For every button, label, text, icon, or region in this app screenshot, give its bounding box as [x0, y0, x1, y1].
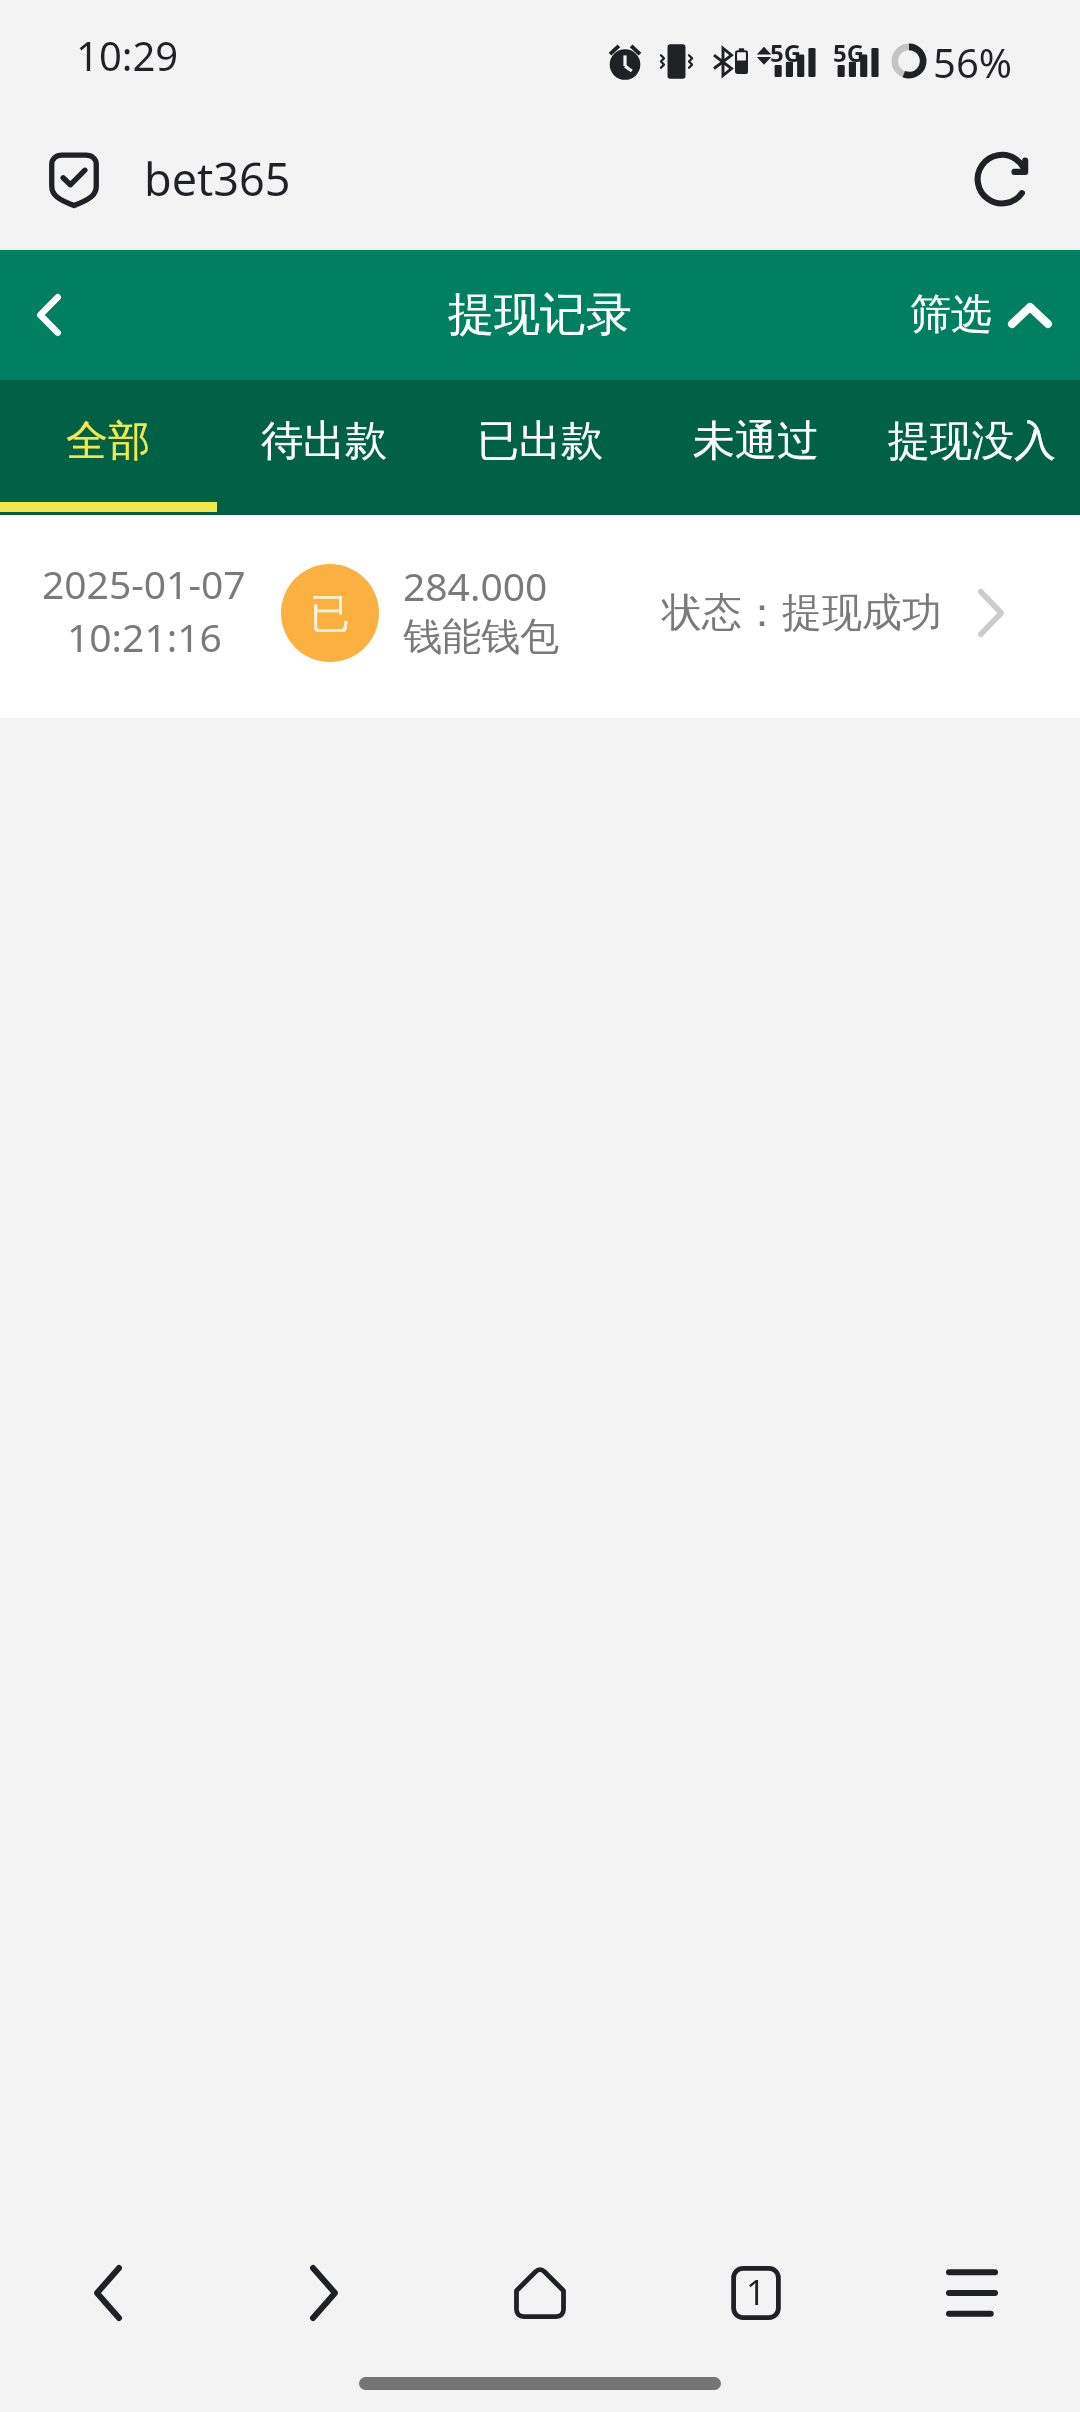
staticText: 待出款 — [261, 415, 387, 468]
staticText: 全部 — [66, 415, 150, 468]
button[interactable]: Back — [0, 2200, 216, 2385]
staticText: 56% — [933, 35, 1012, 89]
staticText: 5G — [770, 36, 802, 69]
staticText: 1 — [746, 2269, 766, 2315]
staticText: 2025-01-07 — [42, 557, 246, 610]
staticText: 筛选 — [910, 289, 992, 341]
button[interactable]: Site security info — [32, 138, 116, 222]
staticText: bet365 — [144, 148, 291, 209]
button[interactable]: Back — [0, 250, 98, 380]
button[interactable]: 2025-01-07 — [0, 515, 1080, 718]
staticText: 提现没入 — [888, 415, 1056, 468]
button[interactable]: 提现没入 — [864, 380, 1080, 515]
staticText: 10:29 — [76, 28, 179, 82]
button[interactable]: 待出款 — [216, 380, 432, 515]
staticText: 已 — [310, 588, 350, 638]
staticText: 284.000 — [403, 559, 548, 612]
staticText: 已出款 — [477, 415, 603, 468]
staticText: 状态：提现成功 — [662, 587, 942, 637]
button[interactable]: Refresh — [960, 138, 1044, 222]
button[interactable]: Home — [432, 2200, 648, 2385]
staticText: 提现记录 — [448, 286, 632, 344]
staticText: 10:21:16 — [67, 610, 222, 663]
button[interactable]: Tabs — [648, 2200, 864, 2385]
staticText: 钱能钱包 — [403, 612, 559, 661]
button[interactable]: Forward — [216, 2200, 432, 2385]
button[interactable]: 全部 — [0, 380, 216, 515]
button[interactable]: Menu — [864, 2200, 1080, 2385]
button[interactable]: 筛选 — [900, 275, 1080, 355]
button[interactable]: 已出款 — [432, 380, 648, 515]
staticText: 未通过 — [693, 415, 819, 468]
button[interactable]: 未通过 — [648, 380, 864, 515]
staticText: 5G — [833, 36, 865, 69]
